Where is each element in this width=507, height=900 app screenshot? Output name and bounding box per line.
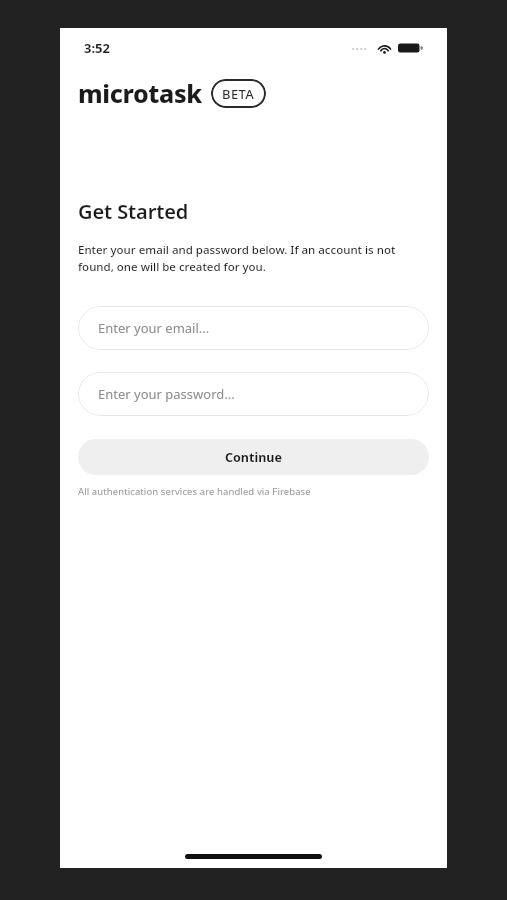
button[interactable]: Enter your email... xyxy=(78,306,429,350)
other: Battery xyxy=(398,42,423,54)
staticText: Continue xyxy=(225,449,282,466)
button[interactable]: Enter your password... xyxy=(78,372,429,416)
other: Wi-Fi xyxy=(377,42,392,54)
staticText: Enter your email... xyxy=(98,319,210,337)
staticText: Get Started xyxy=(78,198,189,225)
button[interactable]: Continue xyxy=(78,439,429,475)
staticText: BETA xyxy=(222,85,255,103)
staticText: All authentication services are handled … xyxy=(78,485,311,498)
staticText: microtask xyxy=(78,76,202,110)
staticText: Enter your password... xyxy=(98,385,235,403)
staticText: 3:52 xyxy=(84,39,110,57)
staticText: Enter your email and password below. If … xyxy=(78,242,429,275)
